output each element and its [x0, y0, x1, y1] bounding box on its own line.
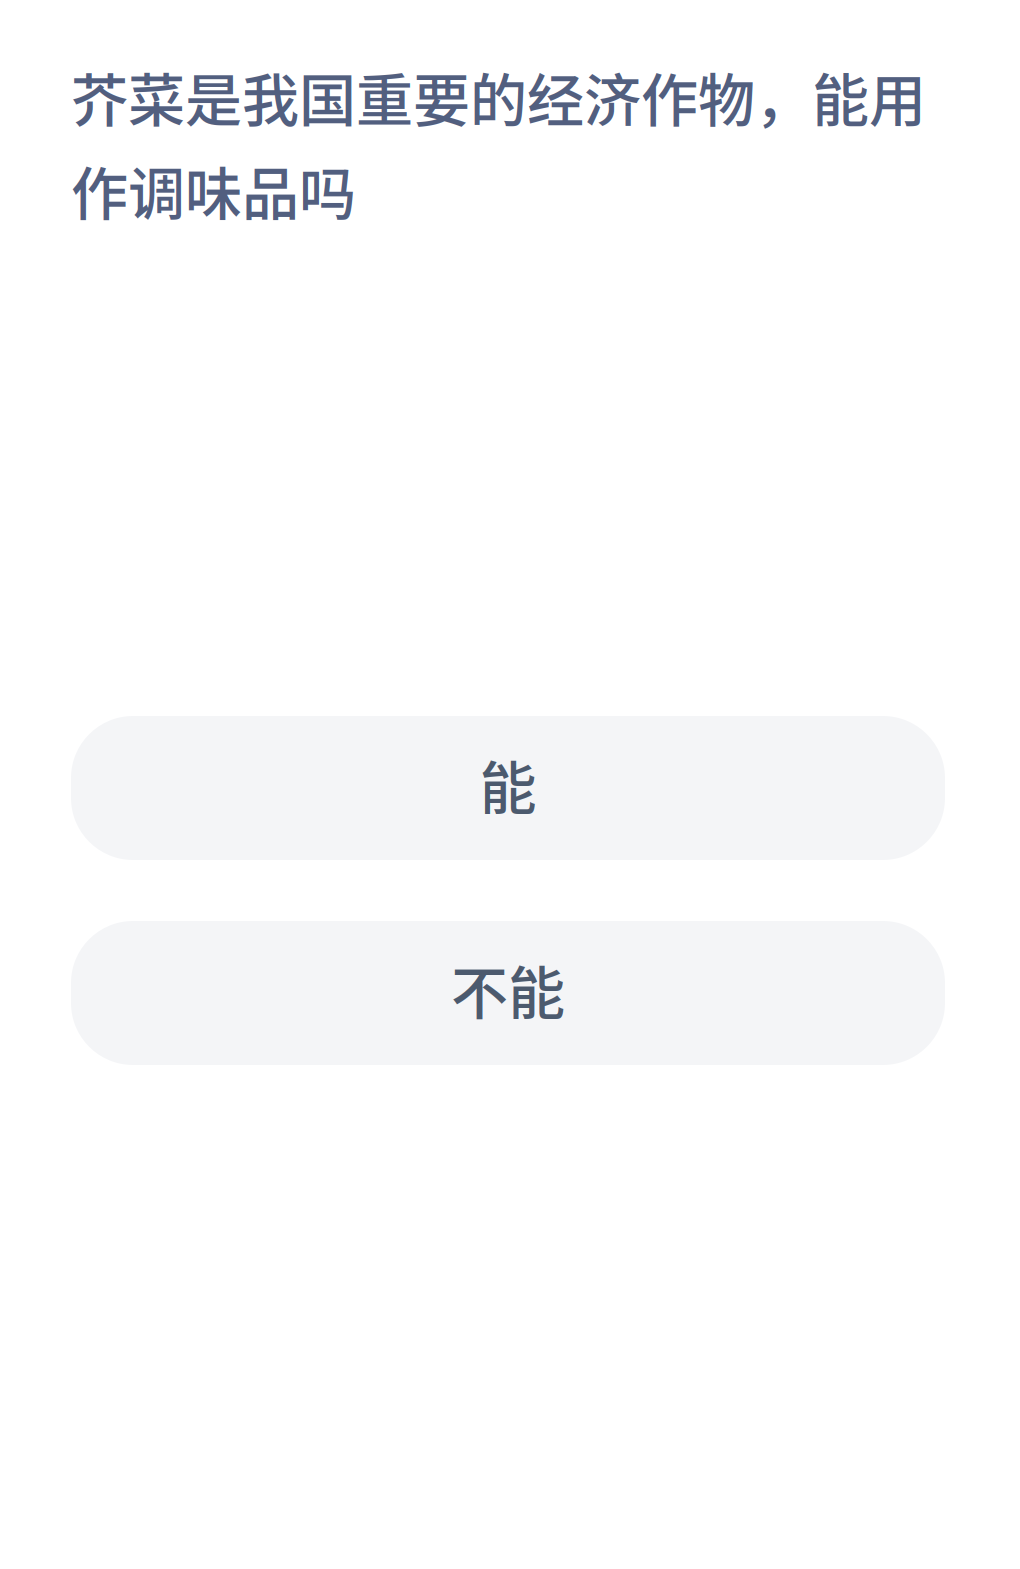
button[interactable]: 不能: [71, 921, 945, 1065]
staticText: 不能: [451, 948, 565, 1030]
staticText: 能: [479, 743, 536, 825]
staticText: 芥菜是我国重要的经济作物，能用作调味品吗: [71, 55, 926, 231]
button[interactable]: 能: [71, 716, 945, 860]
